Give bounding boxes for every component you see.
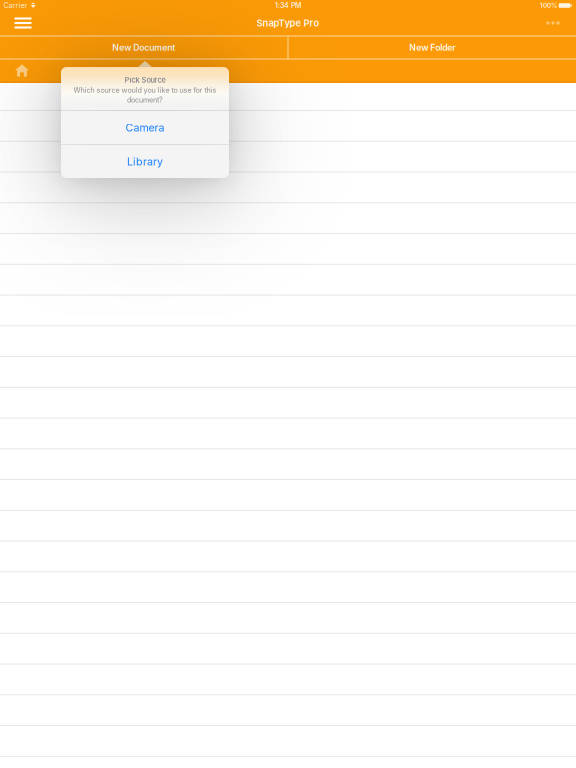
button[interactable]: Menu — [5, 10, 41, 35]
staticText: 1:34 PM — [275, 1, 301, 10]
button[interactable]: Home — [0, 59, 44, 81]
staticText: Pick Source — [124, 76, 165, 84]
button[interactable]: New Document — [0, 36, 287, 58]
button[interactable]: New Folder — [288, 36, 576, 58]
staticText: Which source would you like to use for t… — [73, 86, 216, 94]
staticText: SnapType Pro — [256, 17, 319, 29]
staticText: document? — [127, 95, 163, 104]
button[interactable]: Library — [61, 145, 229, 178]
button[interactable]: More options — [535, 10, 571, 35]
staticText: Carrier — [4, 1, 28, 10]
staticText: 100% — [540, 2, 557, 9]
button[interactable]: Camera — [61, 111, 229, 144]
staticText: New Document — [112, 42, 175, 53]
staticText: Library — [127, 155, 163, 168]
staticText: New Folder — [409, 42, 455, 53]
staticText: Camera — [125, 121, 164, 134]
